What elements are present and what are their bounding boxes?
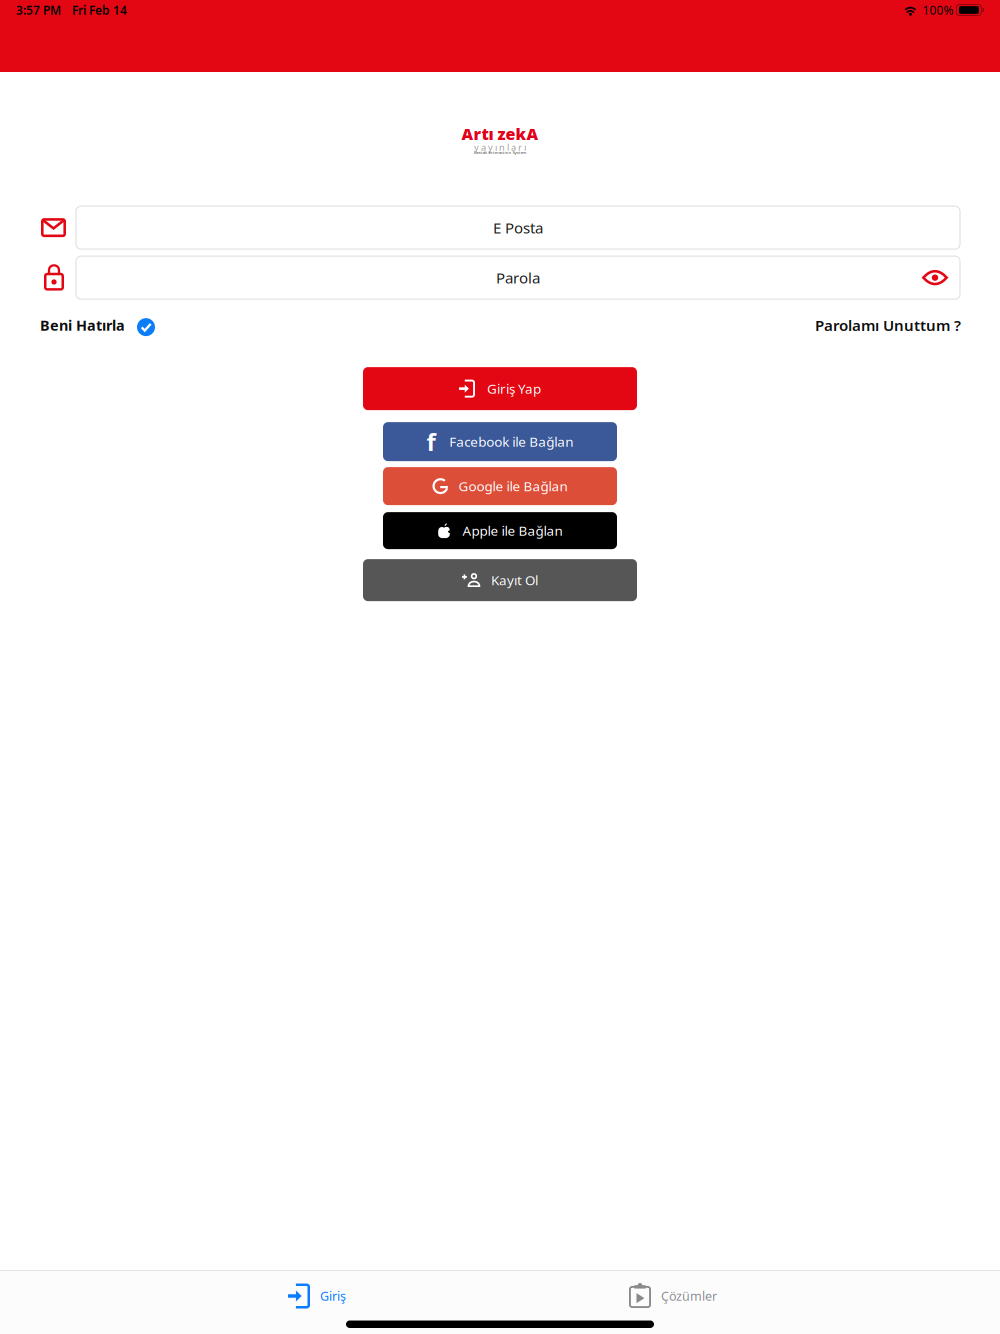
staticText: Beni Hatırla bbox=[40, 315, 125, 335]
staticText: Giriş bbox=[320, 1287, 346, 1305]
staticText: Apple ile Bağlan bbox=[462, 521, 562, 540]
button[interactable]: Kayıt Ol bbox=[363, 559, 637, 601]
button[interactable]: Çözümler bbox=[606, 1282, 740, 1310]
staticText: Gestalt Interaction System bbox=[473, 149, 526, 155]
staticText: E Posta bbox=[493, 217, 543, 238]
staticText: Parola bbox=[496, 267, 540, 288]
staticText: Çözümler bbox=[661, 1287, 717, 1305]
button[interactable]: Parolamı Unuttum ? bbox=[815, 314, 961, 336]
button[interactable]: Apple ile Bağlan bbox=[383, 512, 617, 549]
staticText: Fri Feb 14 bbox=[72, 2, 127, 18]
staticText: Facebook ile Bağlan bbox=[449, 432, 573, 451]
staticText: Parolamı Unuttum ? bbox=[815, 315, 961, 335]
staticText: 100% bbox=[922, 2, 953, 18]
button[interactable]: Giriş Yap bbox=[363, 367, 637, 410]
staticText: 3:57 PM bbox=[16, 2, 61, 18]
button[interactable]: Google ile Bağlan bbox=[383, 467, 617, 505]
button[interactable]: Giriş bbox=[250, 1282, 384, 1310]
staticText: Google ile Bağlan bbox=[458, 477, 567, 495]
staticText: Kayıt Ol bbox=[491, 571, 538, 589]
staticText: Giriş Yap bbox=[487, 379, 541, 398]
button[interactable]: f bbox=[383, 422, 617, 461]
button[interactable]: Beni Hatırla bbox=[40, 314, 155, 336]
staticText: f bbox=[426, 426, 435, 458]
staticText: y a y ı n l a r ı bbox=[474, 141, 526, 153]
button[interactable]: Parolayı Göster bbox=[916, 259, 954, 297]
staticText: Artı zekA bbox=[461, 123, 538, 145]
